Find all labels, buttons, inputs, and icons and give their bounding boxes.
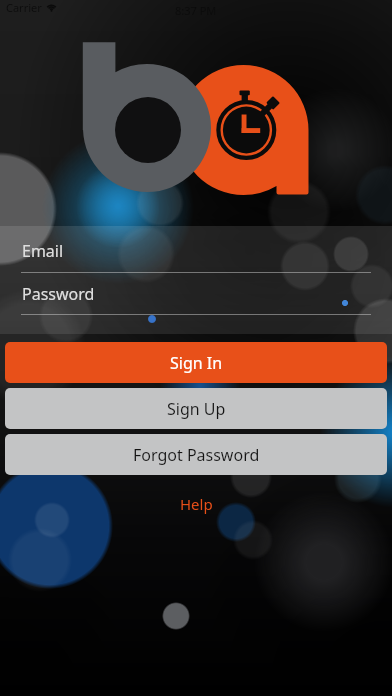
staticText: Help [180,494,213,514]
button[interactable]: Email [0,237,392,265]
staticText: Carrier [6,0,42,15]
staticText: Password [22,283,95,305]
staticText: Sign Up [167,398,226,420]
button[interactable]: Help [164,490,229,518]
staticText: Forgot Password [133,444,260,466]
button[interactable]: Sign Up [5,388,387,429]
button[interactable]: Password [0,280,392,308]
staticText: Email [22,240,64,262]
button[interactable]: Forgot Password [5,434,387,475]
button[interactable]: Sign In [5,342,387,383]
staticText: Sign In [170,352,223,374]
